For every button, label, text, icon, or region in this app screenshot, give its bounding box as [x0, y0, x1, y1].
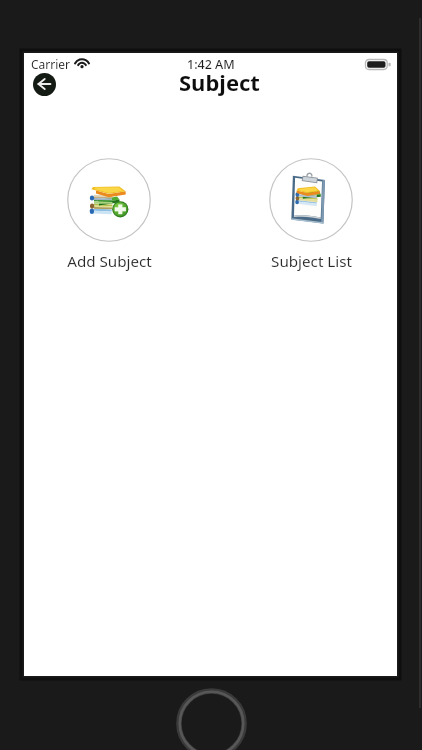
- staticText: Subject: [179, 67, 260, 97]
- button[interactable]: Back: [33, 73, 56, 96]
- staticText: 1:42 AM: [187, 56, 235, 73]
- button[interactable]: Subject List: [231, 158, 391, 272]
- staticText: Add Subject: [67, 251, 152, 272]
- staticText: Subject List: [271, 251, 352, 272]
- button[interactable]: Add Subject: [29, 158, 189, 272]
- staticText: Carrier: [31, 56, 71, 72]
